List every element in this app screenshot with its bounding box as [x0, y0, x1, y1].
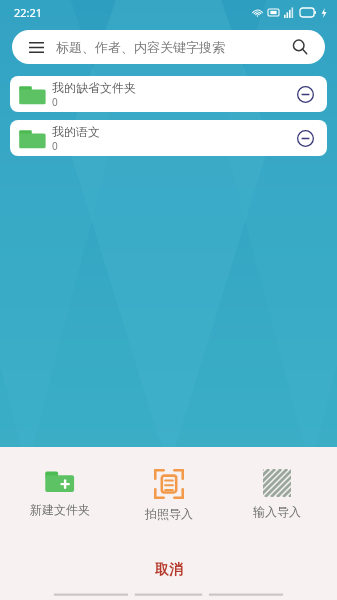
staticText: 拍照导入 [145, 506, 193, 521]
button[interactable]: Menu [12, 30, 325, 64]
button[interactable]: Search [289, 36, 311, 58]
button[interactable]: 我的语文 [10, 120, 327, 156]
staticText: 输入导入 [253, 504, 301, 519]
staticText: 新建文件夹 [30, 502, 90, 517]
button[interactable]: Remove folder [293, 126, 317, 150]
staticText: 取消 [155, 561, 183, 579]
staticText: 0 [52, 95, 58, 109]
button[interactable]: Remove folder [293, 82, 317, 106]
button[interactable]: 我的缺省文件夹 [10, 76, 327, 112]
staticText: 22:21 [14, 5, 43, 20]
staticText: 我的语文 [52, 124, 100, 139]
button[interactable]: 拍照导入 [121, 465, 217, 525]
staticText: 我的缺省文件夹 [52, 80, 136, 95]
staticText: 标题、作者、内容关键字搜索 [56, 39, 289, 55]
button[interactable]: 输入导入 [229, 465, 325, 523]
button[interactable]: Menu [26, 37, 46, 57]
staticText: 0 [52, 139, 58, 153]
button[interactable]: 新建文件夹 [12, 465, 108, 521]
button[interactable]: 取消 [0, 557, 337, 583]
